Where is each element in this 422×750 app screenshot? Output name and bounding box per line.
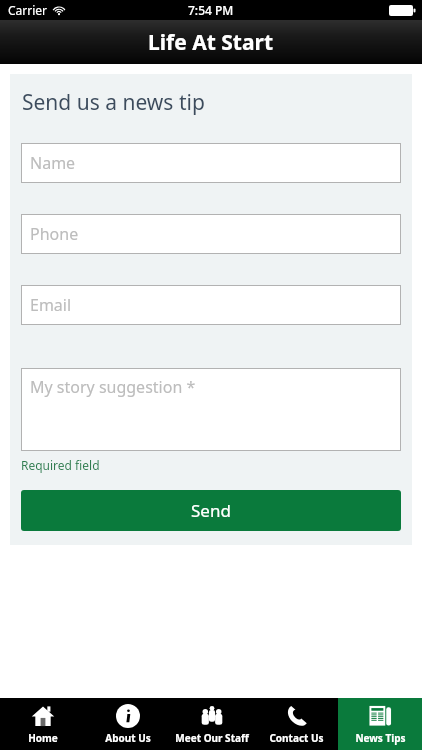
staticText: Carrier [8,2,48,18]
button[interactable]: News Tips [338,698,422,750]
button[interactable]: Name [21,143,401,183]
button[interactable]: Send [21,490,401,531]
button[interactable]: Email [21,285,401,325]
staticText: Send us a news tip [22,88,205,117]
staticText: Email [30,294,72,316]
staticText: Name [30,152,76,174]
staticText: Life At Start [148,28,274,57]
staticText: 7:54 PM [188,2,234,18]
staticText: My story suggestion * [30,376,196,398]
button[interactable]: Contact Us [254,698,338,750]
staticText: Send [191,499,231,522]
staticText: Required field [21,457,100,473]
staticText: News Tips [355,731,406,745]
button[interactable]: My story suggestion * [21,368,401,451]
button[interactable]: About Us [85,698,170,750]
button[interactable]: Phone [21,214,401,254]
button[interactable]: Home [0,698,85,750]
staticText: Meet Our Staff [175,731,249,745]
staticText: Contact Us [269,731,324,745]
staticText: About Us [105,731,151,745]
staticText: Home [28,731,58,745]
staticText: Phone [30,223,79,245]
button[interactable]: Meet Our Staff [170,698,254,750]
